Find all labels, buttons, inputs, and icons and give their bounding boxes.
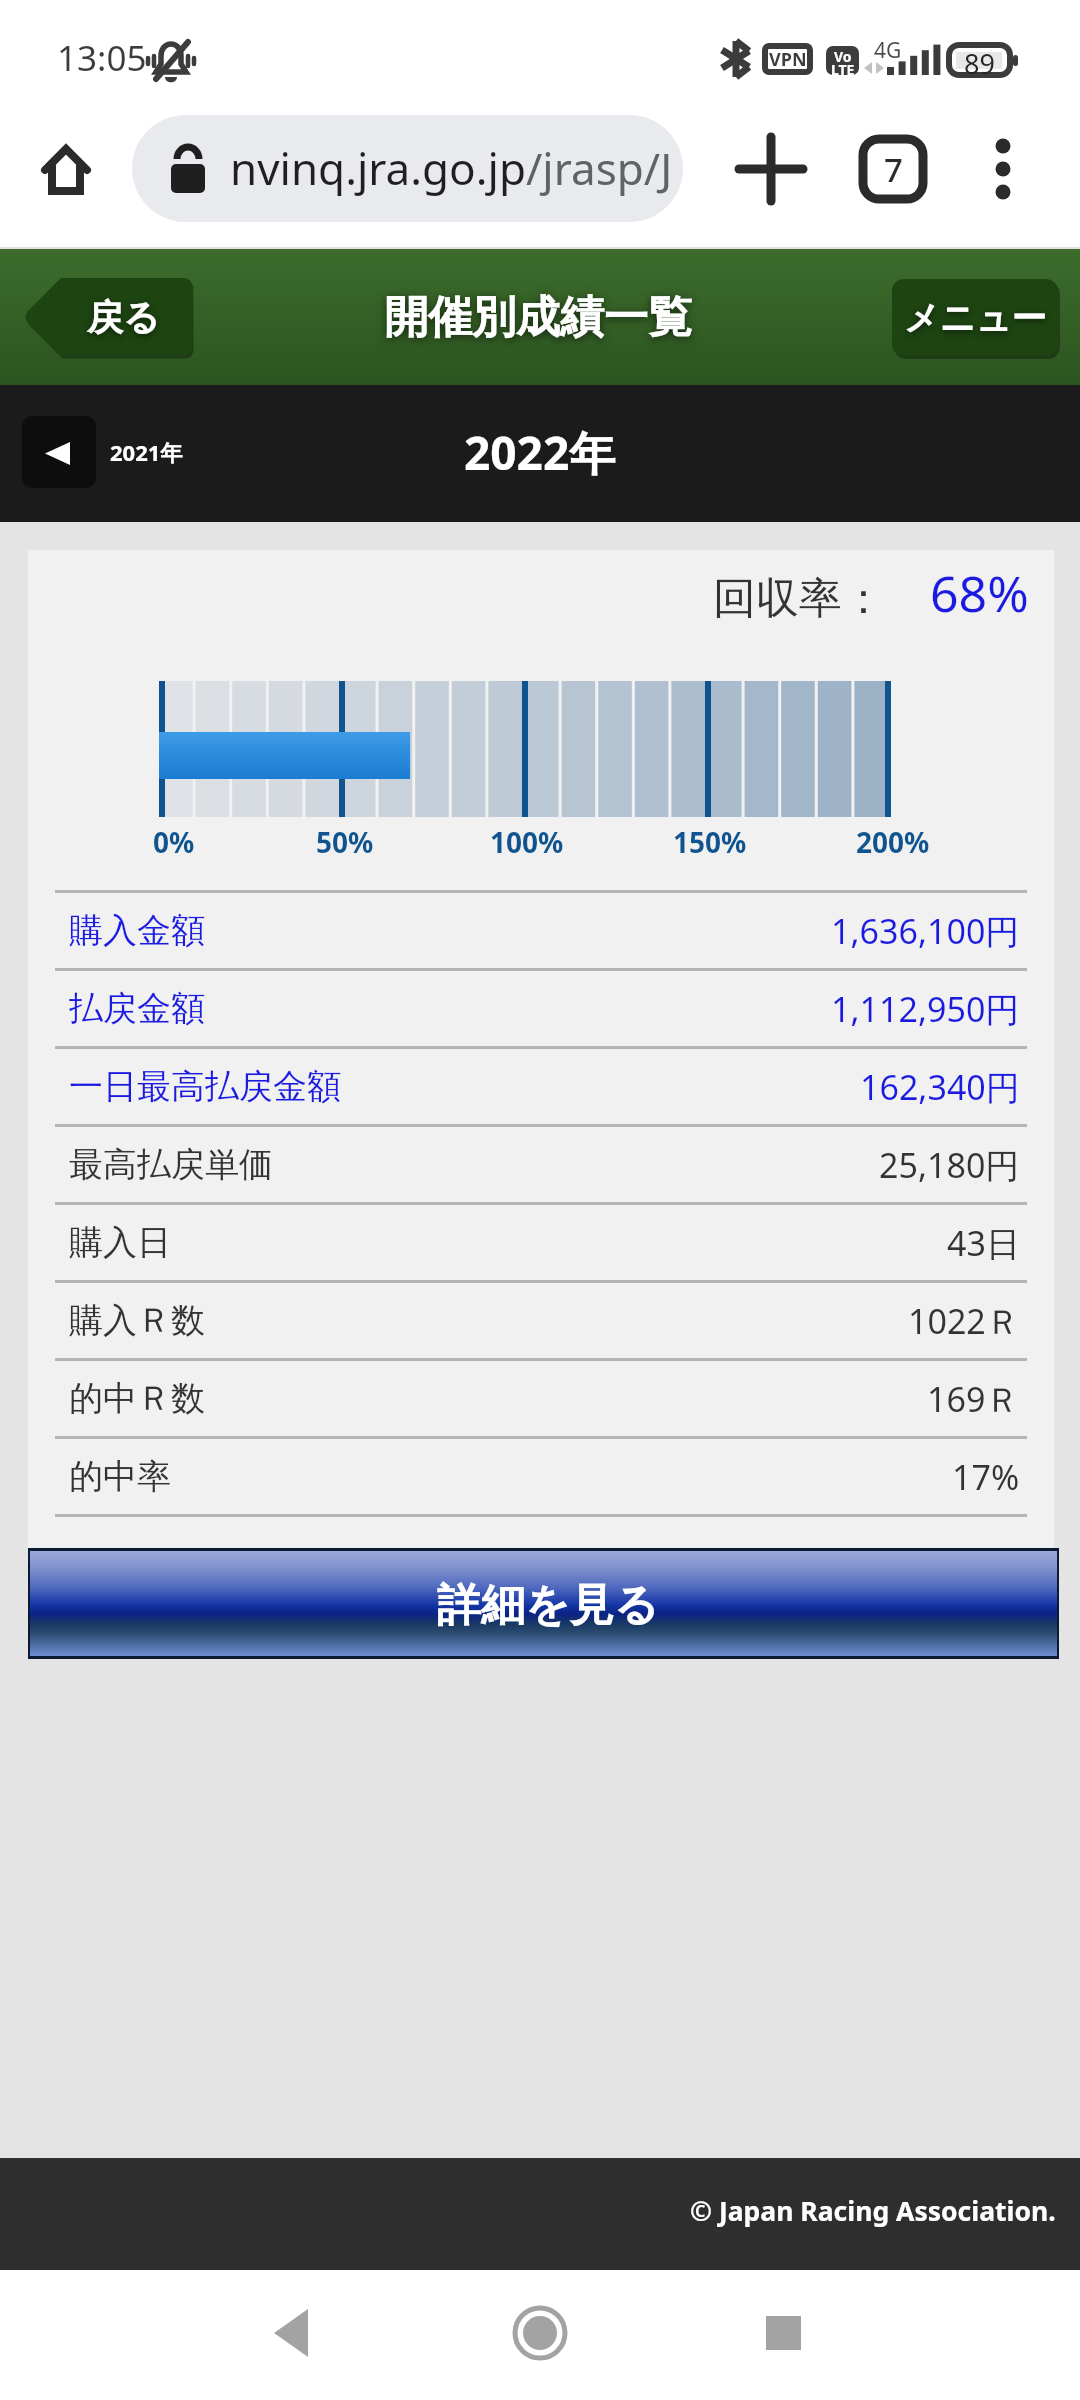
staticText: VPN (769, 47, 807, 72)
staticText: 89 (964, 45, 995, 75)
staticText: LTE (831, 60, 855, 75)
button[interactable]: More options (960, 126, 1046, 212)
staticText: nvinq.jra.go.jp (230, 138, 526, 198)
staticText: 詳細を見る (437, 1578, 660, 1633)
staticText: 17% (952, 1454, 1020, 1500)
staticText: © Japan Racing Association. (690, 2193, 1056, 2229)
button[interactable]: 払戻金額 (69, 971, 1020, 1046)
staticText: 戻る (87, 295, 160, 340)
staticText: 最高払戻単価 (69, 1143, 273, 1186)
button[interactable]: Recent apps (724, 2273, 844, 2393)
button[interactable]: 2021年 (22, 416, 183, 488)
staticText: 4G (874, 36, 902, 65)
staticText: 0% (153, 823, 195, 861)
button[interactable]: nvinq.jra.go.jp (132, 115, 683, 222)
button[interactable]: 的中Ｒ数 (69, 1361, 1020, 1436)
staticText: 購入日 (69, 1221, 171, 1264)
staticText: 1022Ｒ (908, 1298, 1020, 1344)
button[interactable]: 購入Ｒ数 (69, 1283, 1020, 1358)
staticText: 50% (316, 823, 374, 861)
staticText: 1,636,100円 (831, 908, 1020, 954)
staticText: メニュー (904, 296, 1047, 340)
staticText: 162,340円 (860, 1064, 1020, 1110)
staticText: 1,112,950円 (831, 986, 1020, 1032)
button[interactable]: メニュー (892, 279, 1058, 356)
button[interactable]: 購入日 (69, 1205, 1020, 1280)
staticText: 169Ｒ (927, 1376, 1020, 1422)
staticText: 一日最高払戻金額 (69, 1065, 341, 1108)
staticText: 購入金額 (69, 909, 205, 952)
staticText: 25,180円 (879, 1142, 1020, 1188)
button[interactable]: 戻る (25, 278, 192, 356)
button[interactable]: Back (231, 2273, 351, 2393)
button[interactable]: Tabs (850, 126, 936, 212)
staticText: 的中Ｒ数 (69, 1377, 205, 1420)
button[interactable]: 一日最高払戻金額 (69, 1049, 1020, 1124)
staticText: 150% (673, 823, 747, 861)
staticText: 2021年 (110, 437, 183, 467)
staticText: /jrasp/J (526, 138, 673, 198)
staticText: 開催別成績一覧 (384, 290, 692, 345)
staticText: 7 (884, 147, 903, 192)
button[interactable]: 詳細を見る (30, 1551, 1057, 1656)
staticText: 購入Ｒ数 (69, 1299, 205, 1342)
staticText: 100% (490, 823, 564, 861)
staticText: 43日 (947, 1220, 1020, 1266)
button[interactable]: Home (480, 2273, 600, 2393)
staticText: 13:05 (57, 34, 147, 82)
staticText: 68% (930, 559, 1029, 627)
button[interactable]: 的中率 (69, 1439, 1020, 1514)
button[interactable]: Home (21, 110, 111, 200)
button[interactable]: 最高払戻単価 (69, 1127, 1020, 1202)
button[interactable]: 購入金額 (69, 893, 1020, 968)
button[interactable]: New tab (728, 126, 814, 212)
staticText: 的中率 (69, 1455, 171, 1498)
staticText: 払戻金額 (69, 987, 205, 1030)
staticText: 2022年 (464, 421, 616, 484)
staticText: 200% (856, 823, 930, 861)
staticText: 回収率： (713, 572, 885, 626)
staticText: Vo (834, 47, 852, 62)
